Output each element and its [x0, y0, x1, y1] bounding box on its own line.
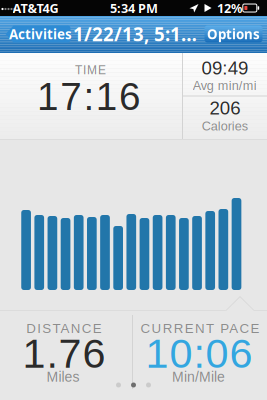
staticText: Options — [207, 25, 260, 43]
staticText: 206 — [209, 98, 240, 118]
staticText: 12% — [217, 0, 242, 17]
staticText: DISTANCE — [26, 321, 102, 336]
staticText: 4G — [42, 0, 58, 17]
staticText: 17:16 — [37, 75, 141, 118]
staticText: Avg min/mi — [193, 78, 257, 93]
staticText: CURRENT PACE — [140, 321, 260, 336]
staticText: Calories — [202, 119, 248, 133]
staticText: 5:34 PM — [110, 0, 158, 17]
staticText: 10:06 — [145, 330, 252, 377]
staticText: TIME — [75, 63, 106, 77]
button[interactable]: Activities — [5, 25, 70, 42]
staticText: Activities — [9, 25, 72, 43]
staticText: Min/Mile — [172, 369, 225, 385]
staticText: Miles — [46, 369, 79, 385]
staticText: AT&T — [12, 0, 43, 17]
button[interactable]: Options — [204, 25, 262, 42]
staticText: 1/22/13, 5:1… — [73, 21, 197, 47]
staticText: 09:49 — [201, 58, 248, 78]
staticText: 1.76 — [22, 330, 105, 377]
